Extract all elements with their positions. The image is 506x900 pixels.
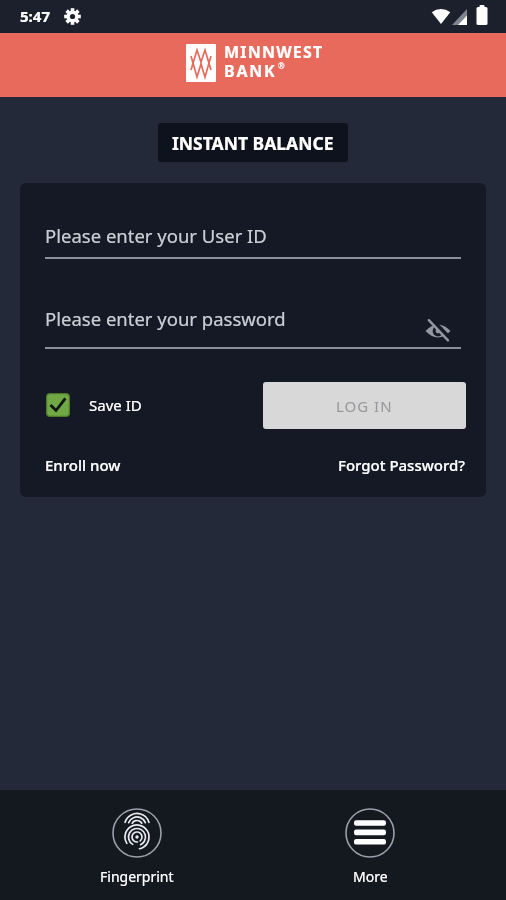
button[interactable]: More (310, 808, 430, 886)
button[interactable]: Fingerprint (77, 808, 197, 886)
button[interactable]: Forgot Password? (338, 455, 466, 475)
button[interactable]: Enroll now (45, 455, 121, 475)
button[interactable]: INSTANT BALANCE (158, 123, 348, 162)
staticText: Please enter your User ID (45, 223, 267, 248)
staticText: Please enter your password (45, 306, 286, 331)
staticText: BANK (224, 60, 277, 82)
staticText: MINNWEST (224, 41, 324, 63)
staticText: Fingerprint (100, 867, 174, 886)
button[interactable]: LOG IN (263, 382, 466, 429)
staticText: INSTANT BALANCE (172, 131, 334, 155)
staticText: ® (278, 60, 285, 71)
button[interactable]: Save ID (46, 393, 142, 417)
staticText: LOG IN (336, 396, 393, 416)
staticText: 5:47 (20, 6, 50, 26)
staticText: More (353, 867, 388, 886)
staticText: Save ID (89, 395, 142, 415)
